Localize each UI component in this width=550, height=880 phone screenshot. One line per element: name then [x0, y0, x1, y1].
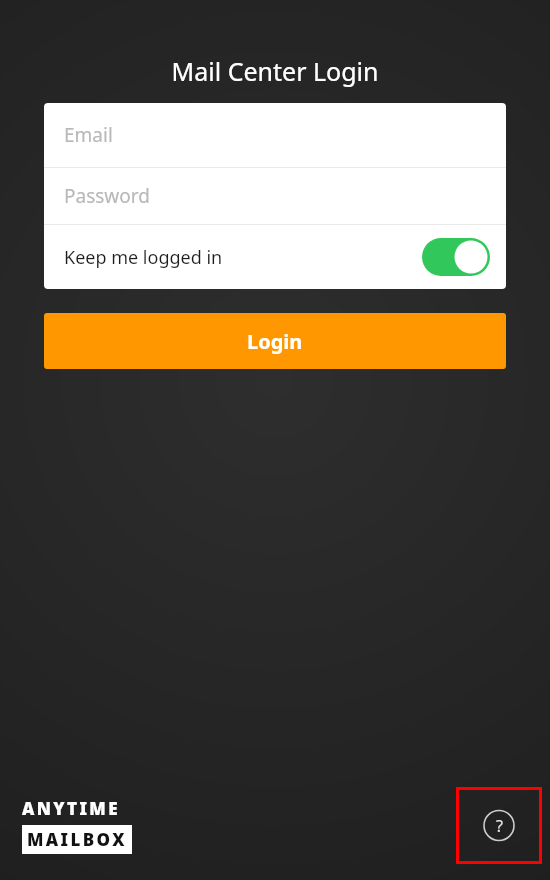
staticText: Login — [247, 328, 303, 355]
staticText: ? — [496, 815, 503, 837]
staticText: Mail Center Login — [0, 54, 550, 88]
staticText: Email — [64, 122, 113, 148]
button[interactable]: Keep me logged in — [44, 225, 506, 289]
staticText: MAILBOX — [27, 828, 127, 851]
button[interactable]: Email — [44, 103, 506, 167]
staticText: ANYTIME — [22, 797, 120, 820]
button[interactable]: Password — [44, 168, 506, 224]
button[interactable]: Help — [456, 787, 542, 864]
staticText: Password — [64, 183, 150, 209]
staticText: Keep me logged in — [64, 245, 223, 270]
button[interactable]: Login — [44, 313, 506, 369]
